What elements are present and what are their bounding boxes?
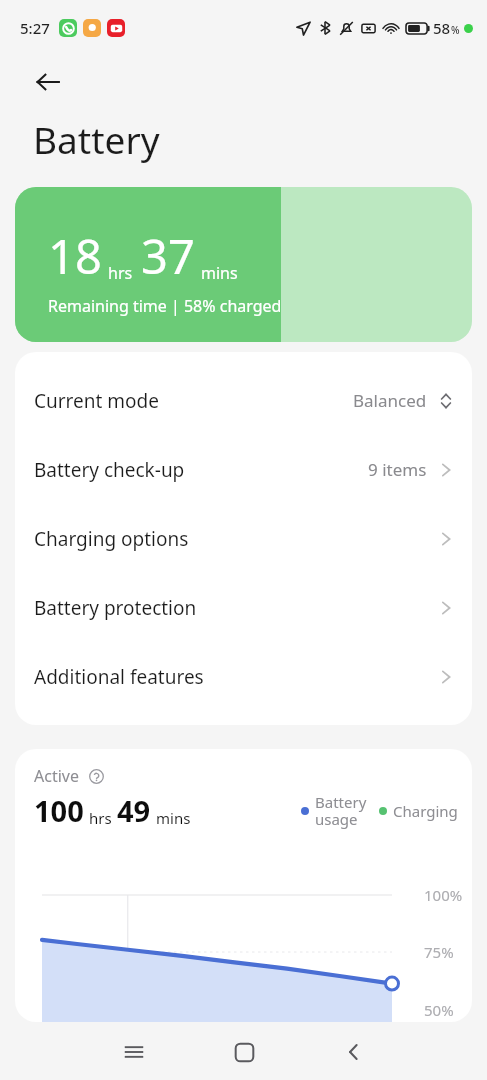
button[interactable]: Recent apps [79, 1024, 189, 1080]
button[interactable]: Help about active time [85, 765, 107, 787]
staticText: 100% [424, 885, 463, 905]
staticText: Current mode [34, 388, 353, 414]
staticText: hrs [108, 262, 133, 284]
staticText: 5:27 [20, 18, 50, 38]
button[interactable]: Back [26, 60, 70, 104]
staticText: Charging [393, 801, 458, 821]
button[interactable]: 18 [15, 187, 472, 342]
button[interactable]: Additional features [15, 642, 472, 711]
staticText: Battery [33, 114, 160, 164]
staticText: % [451, 23, 460, 37]
staticText: 50% [424, 1000, 454, 1020]
staticText: 100 [34, 791, 84, 830]
button[interactable]: Battery protection [15, 573, 472, 642]
button[interactable]: Battery check-up [15, 435, 472, 504]
staticText: Battery protection [34, 595, 436, 621]
button[interactable]: Current mode [15, 366, 472, 435]
staticText: 49 [117, 791, 151, 830]
staticText: 37 [141, 224, 195, 288]
staticText: 9 items [368, 458, 427, 481]
staticText: Additional features [34, 664, 436, 690]
staticText: mins [156, 808, 191, 828]
staticText: 18 [48, 224, 102, 288]
staticText: Battery usage [315, 792, 367, 830]
staticText: mins [201, 262, 238, 284]
button[interactable]: Home [189, 1024, 299, 1080]
staticText: Battery check-up [34, 457, 368, 483]
staticText: Remaining time | 58% charged [48, 295, 282, 317]
staticText: Active [34, 765, 79, 787]
button[interactable]: Back [299, 1024, 409, 1080]
staticText: 75% [424, 942, 454, 962]
staticText: hrs [89, 808, 112, 828]
button[interactable]: Charging options [15, 504, 472, 573]
staticText: Charging options [34, 526, 436, 552]
staticText: 58 [433, 18, 451, 38]
staticText: Balanced [353, 389, 427, 412]
